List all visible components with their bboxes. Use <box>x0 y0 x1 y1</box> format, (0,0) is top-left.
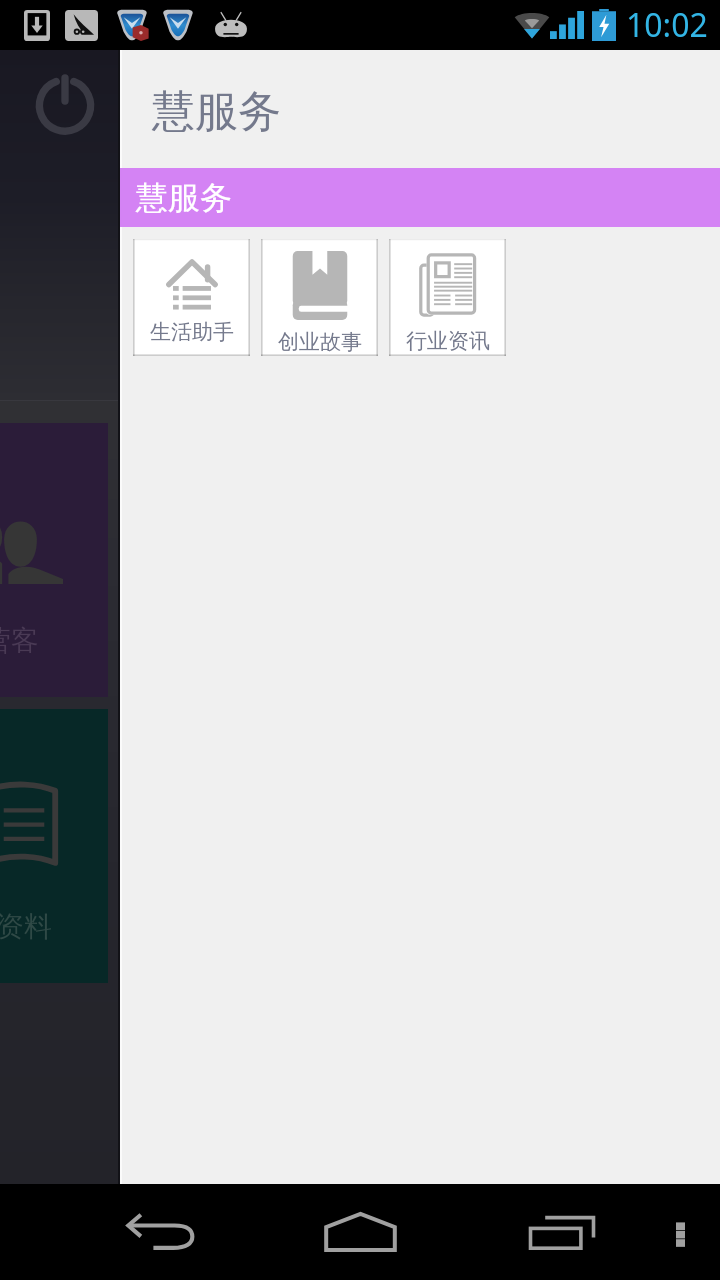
staticText: 营客 <box>0 623 39 658</box>
staticText: 创业故事 <box>278 329 362 355</box>
staticText: 慧服务 <box>152 85 281 139</box>
button[interactable]: Recents <box>482 1184 642 1280</box>
button[interactable]: 资料 <box>0 709 108 983</box>
button[interactable]: 行业资讯 <box>389 239 506 356</box>
staticText: 资料 <box>0 909 52 944</box>
button[interactable]: More options <box>640 1184 720 1280</box>
staticText: 行业资讯 <box>406 328 490 354</box>
button[interactable]: 创业故事 <box>261 239 378 356</box>
button[interactable]: 营客 <box>0 423 108 697</box>
button[interactable]: Power <box>33 71 97 135</box>
button[interactable]: 生活助手 <box>133 239 250 356</box>
button[interactable]: Home <box>280 1184 440 1280</box>
staticText: 10:02 <box>626 3 708 47</box>
button[interactable]: 慧服务 <box>120 168 720 227</box>
staticText: 慧服务 <box>136 178 232 218</box>
button[interactable]: Back <box>80 1184 240 1280</box>
staticText: 生活助手 <box>150 319 234 345</box>
